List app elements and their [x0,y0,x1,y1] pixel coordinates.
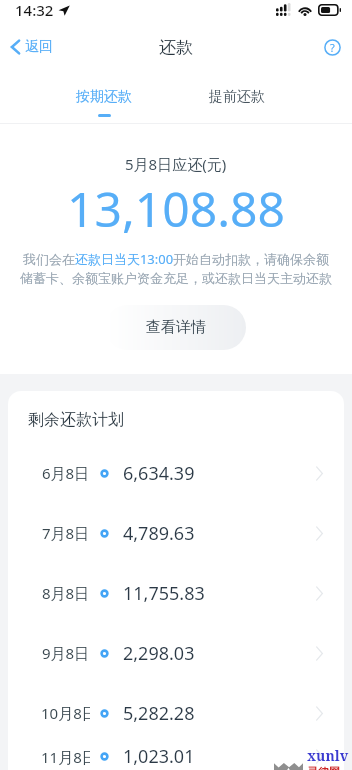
staticText: 13,108.88 [67,176,285,241]
staticText: 按期还款 [76,88,132,106]
staticText: 剩余还款计划 [28,410,124,430]
staticText: 5,282.28 [123,701,195,726]
staticText: 2,298.03 [123,641,195,666]
staticText: 11月8日 [41,747,90,767]
button[interactable]: 按期还款 [37,68,170,123]
button[interactable]: 9月8日 [8,623,344,683]
staticText: ? [330,40,335,55]
staticText: 4,789.63 [123,521,195,546]
staticText: 6月8日 [42,463,90,483]
button[interactable]: 6月8日 [8,443,344,503]
staticText: 1,023.01 [123,744,195,769]
staticText: 查看详情 [146,318,206,337]
button[interactable]: 查看详情 [106,305,246,350]
button[interactable]: 返回 [0,32,65,62]
button[interactable]: 10月8日 [8,683,344,743]
staticText: 11,755.83 [123,581,205,606]
staticText: xunlv [307,746,349,765]
staticText: 10月8日 [41,703,90,723]
staticText: 9月8日 [42,643,90,663]
button[interactable]: 8月8日 [8,563,344,623]
staticText: 6,634.39 [123,461,195,486]
staticText: 寻律网 [307,765,340,770]
staticText: 返回 [25,38,53,56]
button[interactable]: 提前还款 [170,68,303,123]
staticText: 8月8日 [42,583,90,603]
button[interactable]: Help [312,31,352,64]
button[interactable]: 11月8日 [8,743,344,770]
staticText: 7月8日 [42,523,90,543]
staticText: 提前还款 [209,88,265,106]
button[interactable]: 7月8日 [8,503,344,563]
staticText: 我们会在还款日当天13:00开始自动扣款，请确保余额储蓄卡、余额宝账户资金充足，… [17,250,335,287]
staticText: 还款 [159,37,193,58]
staticText: 14:32 [15,0,54,20]
staticText: 5月8日应还(元) [125,154,227,174]
